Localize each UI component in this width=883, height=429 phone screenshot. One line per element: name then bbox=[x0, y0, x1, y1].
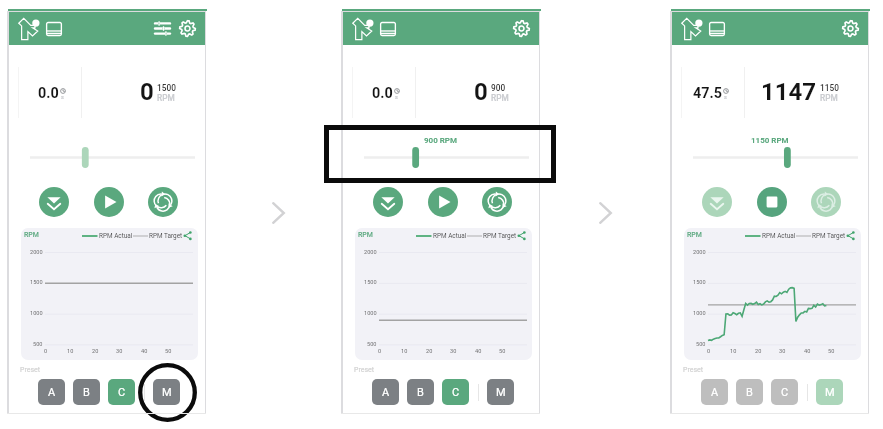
button[interactable]: Stop bbox=[757, 187, 787, 217]
button[interactable]: M bbox=[816, 379, 843, 405]
staticText: 0 bbox=[707, 348, 711, 355]
staticText: 900 bbox=[491, 83, 506, 93]
button[interactable]: Decrease speed bbox=[39, 187, 69, 217]
staticText: 500 bbox=[33, 341, 43, 348]
staticText: B bbox=[746, 386, 753, 399]
staticText: 20 bbox=[92, 348, 99, 355]
button[interactable]: Settings bbox=[179, 20, 196, 37]
staticText: 0.0 bbox=[372, 85, 393, 99]
button[interactable]: Speed slider bbox=[670, 143, 869, 175]
staticText: 0.0 bbox=[38, 85, 59, 99]
button[interactable]: Speed slider bbox=[7, 143, 206, 175]
button[interactable]: Settings bbox=[513, 20, 530, 37]
staticText: 50 bbox=[499, 348, 506, 355]
button[interactable]: Start bbox=[94, 187, 124, 217]
staticText: 1500 bbox=[364, 279, 377, 286]
button[interactable]: B bbox=[73, 379, 100, 405]
button[interactable]: Share bbox=[517, 231, 526, 240]
button[interactable]: Tune bbox=[154, 20, 171, 37]
staticText: 30 bbox=[779, 348, 786, 355]
button[interactable]: B bbox=[736, 379, 763, 405]
button[interactable]: A bbox=[38, 379, 65, 405]
staticText: 1000 bbox=[364, 310, 377, 317]
staticText: B bbox=[417, 386, 424, 399]
staticText: s bbox=[724, 94, 727, 100]
staticText: 900 RPM bbox=[424, 136, 458, 145]
staticText: RPM bbox=[157, 93, 175, 103]
staticText: 0 bbox=[378, 348, 382, 355]
staticText: M bbox=[496, 386, 506, 399]
button[interactable]: C bbox=[771, 379, 798, 405]
button[interactable]: Mix bbox=[482, 187, 512, 217]
staticText: RPM Target bbox=[149, 232, 183, 240]
staticText: 1150 bbox=[820, 83, 839, 93]
staticText: 20 bbox=[426, 348, 433, 355]
staticText: A bbox=[48, 386, 56, 399]
staticText: C bbox=[452, 386, 460, 399]
staticText: M bbox=[162, 386, 172, 399]
staticText: 10 bbox=[67, 348, 74, 355]
button[interactable]: Share bbox=[846, 231, 855, 240]
button[interactable]: Mix bbox=[148, 187, 178, 217]
staticText: 1147 bbox=[761, 78, 817, 106]
staticText: 1500 bbox=[157, 83, 176, 93]
staticText: RPM bbox=[491, 93, 509, 103]
staticText: RPM Target bbox=[483, 232, 517, 240]
staticText: RPM Actual bbox=[762, 232, 796, 240]
staticText: RPM Target bbox=[812, 232, 846, 240]
staticText: 2000 bbox=[364, 249, 377, 256]
staticText: 40 bbox=[475, 348, 482, 355]
staticText: RPM bbox=[820, 93, 838, 103]
staticText: Preset bbox=[20, 366, 41, 374]
staticText: 40 bbox=[804, 348, 811, 355]
staticText: 500 bbox=[367, 341, 377, 348]
button[interactable]: C bbox=[442, 379, 469, 405]
staticText: B bbox=[83, 386, 90, 399]
staticText: s bbox=[395, 94, 398, 100]
staticText: 1000 bbox=[693, 310, 706, 317]
staticText: 0 bbox=[140, 78, 154, 106]
staticText: 2000 bbox=[30, 249, 43, 256]
button[interactable]: Mix bbox=[811, 187, 841, 217]
staticText: 0 bbox=[474, 78, 488, 106]
staticText: 500 bbox=[696, 341, 706, 348]
button[interactable]: B bbox=[407, 379, 434, 405]
staticText: Preset bbox=[683, 366, 704, 374]
staticText: C bbox=[118, 386, 126, 399]
button[interactable]: Start bbox=[428, 187, 458, 217]
button[interactable]: A bbox=[372, 379, 399, 405]
staticText: 1500 bbox=[30, 279, 43, 286]
staticText: 50 bbox=[828, 348, 835, 355]
button[interactable]: Speed slider bbox=[341, 143, 540, 175]
staticText: RPM bbox=[24, 231, 39, 239]
button[interactable]: M bbox=[153, 379, 180, 405]
staticText: 1150 RPM bbox=[751, 136, 789, 145]
staticText: s bbox=[61, 94, 64, 100]
staticText: 40 bbox=[141, 348, 148, 355]
staticText: RPM bbox=[358, 231, 373, 239]
button[interactable]: M bbox=[487, 379, 514, 405]
button[interactable]: Settings bbox=[842, 20, 859, 37]
staticText: RPM bbox=[687, 231, 702, 239]
button[interactable]: C bbox=[108, 379, 135, 405]
staticText: Preset bbox=[354, 366, 375, 374]
button[interactable]: A bbox=[701, 379, 728, 405]
staticText: RPM Actual bbox=[433, 232, 467, 240]
button[interactable]: Decrease speed bbox=[702, 187, 732, 217]
staticText: RPM Actual bbox=[99, 232, 133, 240]
staticText: 50 bbox=[165, 348, 172, 355]
staticText: 0 bbox=[44, 348, 48, 355]
staticText: 1500 bbox=[693, 279, 706, 286]
staticText: 30 bbox=[450, 348, 457, 355]
staticText: M bbox=[825, 386, 835, 399]
staticText: 2000 bbox=[693, 249, 706, 256]
staticText: 10 bbox=[401, 348, 408, 355]
button[interactable]: Share bbox=[183, 231, 192, 240]
button[interactable]: Decrease speed bbox=[373, 187, 403, 217]
staticText: A bbox=[382, 386, 390, 399]
staticText: 1000 bbox=[30, 310, 43, 317]
staticText: 47.5 bbox=[693, 85, 722, 99]
staticText: A bbox=[711, 386, 719, 399]
staticText: 10 bbox=[730, 348, 737, 355]
staticText: C bbox=[781, 386, 789, 399]
